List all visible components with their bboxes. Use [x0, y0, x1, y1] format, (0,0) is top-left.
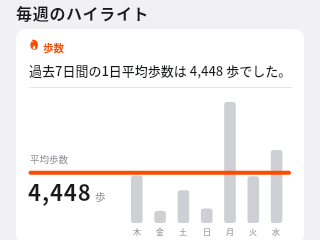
staticText: 過去7日間の1日平均歩数は 4,448 歩でした。 — [29, 61, 292, 80]
staticText: 水 — [269, 226, 283, 238]
staticText: 金 — [153, 226, 167, 238]
staticText: 火 — [246, 226, 260, 238]
staticText: 木 — [130, 226, 144, 238]
staticText: 平均歩数 — [30, 152, 69, 166]
staticText: 4,448 — [28, 175, 92, 207]
staticText: 毎週のハイライト — [16, 1, 150, 24]
staticText: 歩数 — [43, 40, 64, 55]
other: 歩数 — [30, 39, 38, 50]
button[interactable]: 歩数 — [16, 29, 304, 240]
staticText: 日 — [200, 226, 214, 238]
staticText: 土 — [176, 226, 190, 238]
staticText: 月 — [223, 226, 237, 238]
staticText: 歩 — [95, 189, 106, 204]
